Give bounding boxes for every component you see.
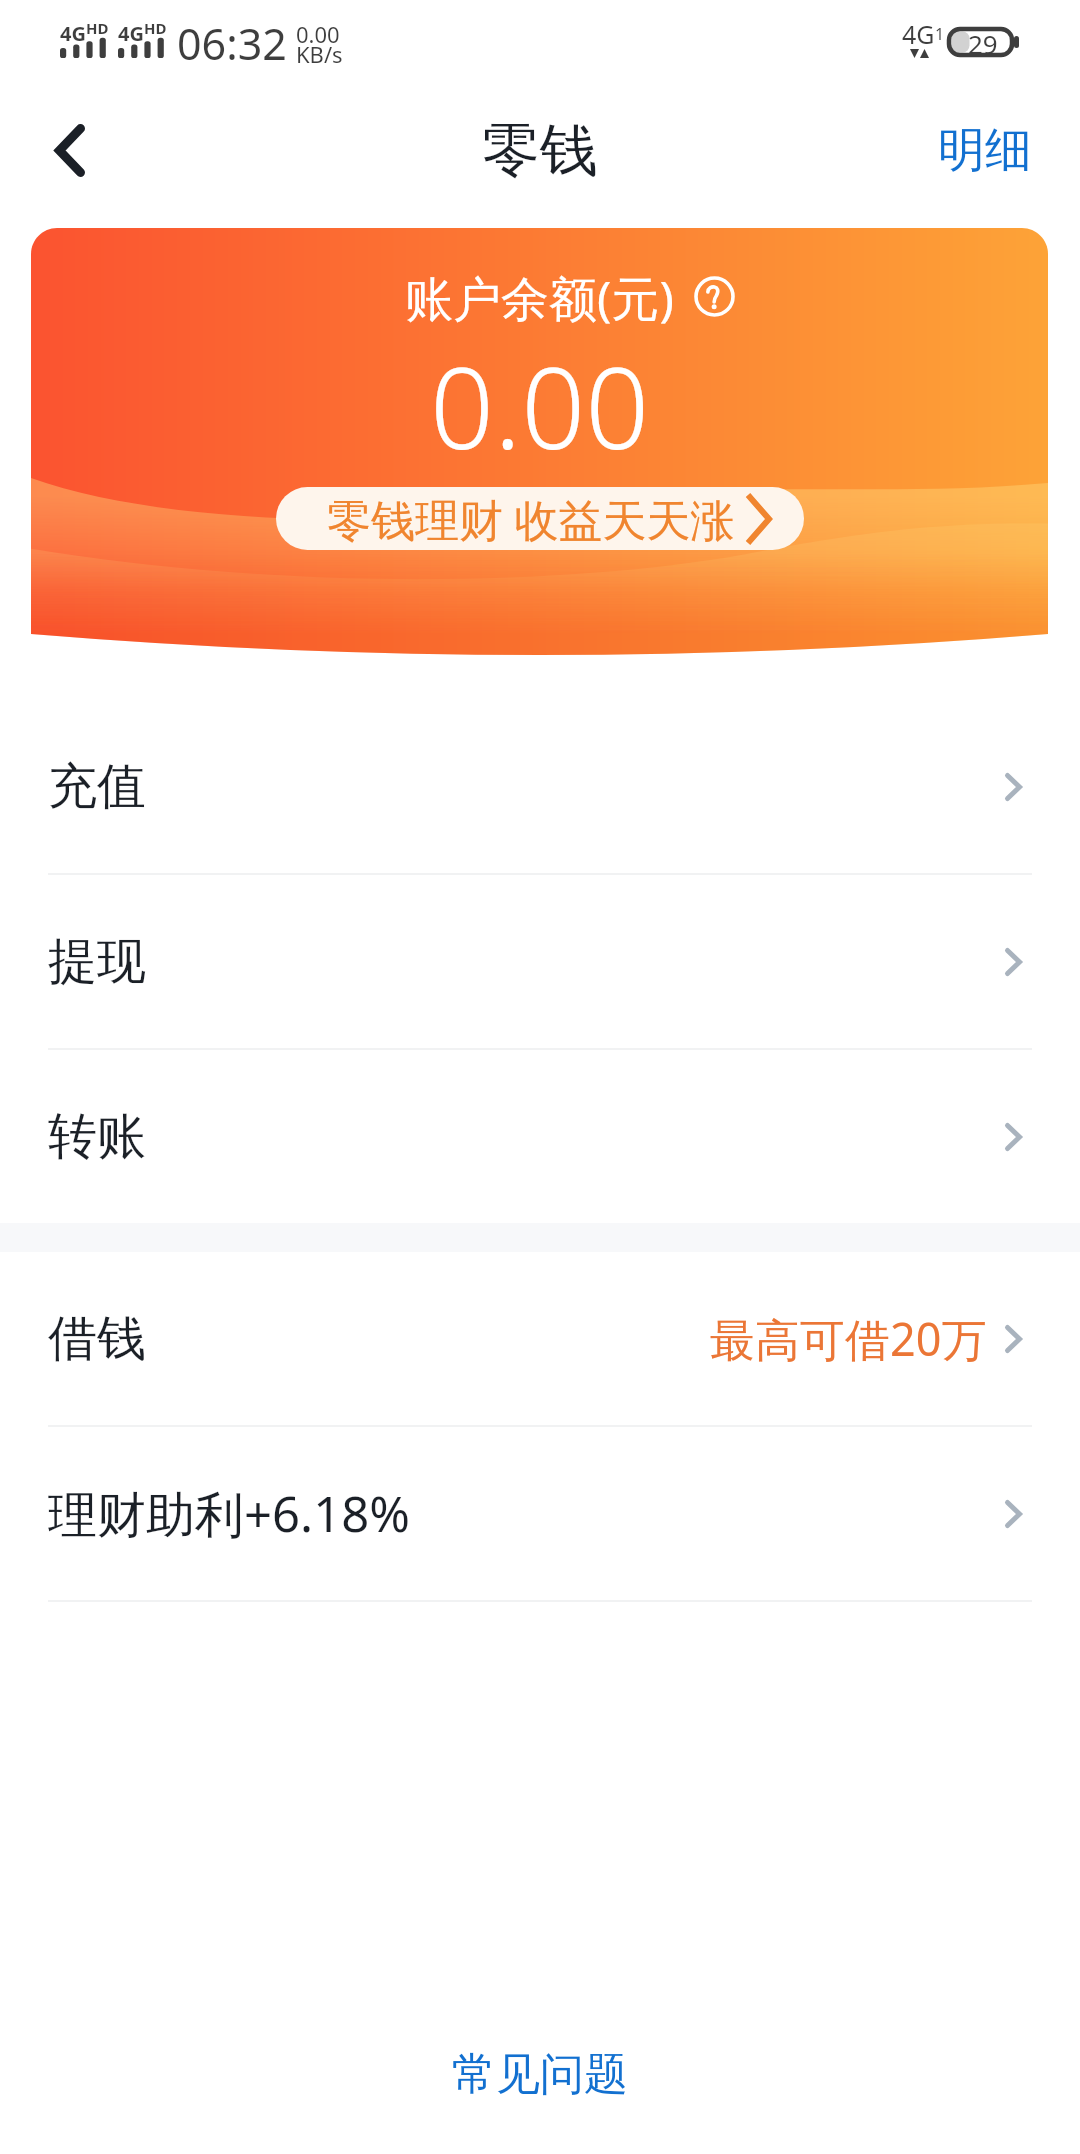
staticText: 常见问题 (452, 2047, 628, 2102)
button[interactable]: 转账 (0, 1050, 1080, 1223)
staticText: 4G (902, 17, 935, 51)
staticText: 账户余额(元) (405, 265, 674, 331)
staticText: 提现 (48, 931, 146, 993)
staticText: 充值 (48, 756, 146, 818)
staticText: 0.00 (296, 19, 340, 49)
staticText: 零钱理财 收益天天涨 (327, 489, 735, 549)
staticText: 零钱 (482, 114, 598, 187)
staticText: 29 (968, 26, 998, 56)
staticText: 转账 (48, 1106, 146, 1168)
staticText: 4G (60, 20, 86, 47)
staticText: KB/s (296, 39, 343, 69)
button[interactable]: Balance help (694, 276, 735, 317)
button[interactable]: 常见问题 (0, 2019, 1080, 2129)
staticText: HD (86, 18, 109, 38)
button[interactable]: 明细 (898, 101, 1080, 200)
button[interactable]: 充值 (0, 700, 1080, 873)
button[interactable]: 零钱理财 收益天天涨 (276, 487, 804, 550)
staticText: 理财助利+6.18% (48, 1480, 410, 1547)
staticText: 借钱 (48, 1308, 146, 1370)
staticText: 最高可借20万 (710, 1308, 987, 1369)
staticText: 0.00 (430, 329, 650, 482)
button[interactable]: 提现 (0, 875, 1080, 1048)
staticText: 1 (935, 23, 945, 45)
staticText: HD (144, 18, 167, 38)
staticText: 明细 (938, 121, 1032, 180)
staticText: 06:32 (177, 14, 287, 73)
button[interactable]: 理财助利+6.18% (0, 1427, 1080, 1600)
staticText: 4G (118, 20, 144, 47)
button[interactable]: Back (22, 95, 118, 205)
button[interactable]: 借钱 (0, 1252, 1080, 1425)
